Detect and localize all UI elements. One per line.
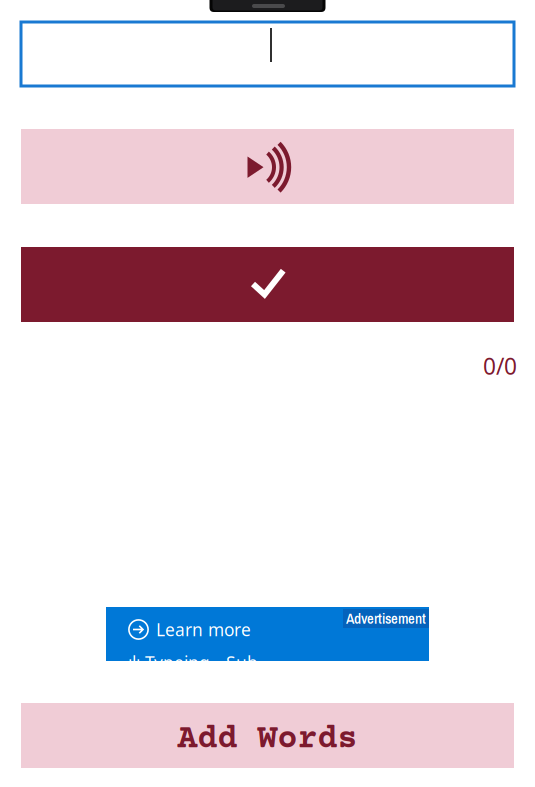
button[interactable]: Check answer — [21, 247, 514, 322]
button[interactable]: Advertisement, Learn more — [106, 607, 429, 661]
staticText: Add Words — [177, 721, 357, 759]
staticText: ılı Typeing - Sub — [128, 651, 258, 674]
staticText: Advertisement — [346, 609, 426, 628]
staticText: Learn more — [156, 618, 251, 641]
staticText: 0/0 — [483, 351, 517, 381]
button[interactable]: Play word audio — [21, 129, 514, 204]
button[interactable]: Add Words — [21, 703, 514, 768]
